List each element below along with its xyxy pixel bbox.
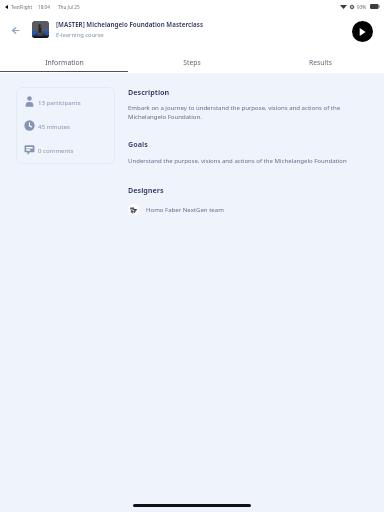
staticText: Designers bbox=[128, 185, 164, 195]
staticText: 18:04 bbox=[38, 4, 50, 10]
staticText: Homo Faber NextGen team bbox=[146, 206, 224, 214]
staticText: Description bbox=[128, 87, 170, 97]
button[interactable]: Steps bbox=[128, 53, 256, 71]
button[interactable]: Information bbox=[0, 53, 128, 71]
staticText: 0 comments bbox=[38, 146, 74, 154]
staticText: Results bbox=[309, 58, 332, 67]
button[interactable]: Back bbox=[7, 22, 23, 38]
staticText: Embark on a journey to understand the pu… bbox=[128, 104, 350, 120]
staticText: Goals bbox=[128, 139, 148, 149]
staticText: Understand the purpose, visions and acti… bbox=[128, 157, 347, 165]
staticText: E-learning course bbox=[56, 31, 104, 39]
button[interactable]: Results bbox=[256, 53, 384, 71]
button[interactable]: Play course bbox=[352, 21, 373, 42]
staticText: Thu Jul 25 bbox=[58, 4, 80, 10]
staticText: 93% bbox=[357, 4, 367, 10]
staticText: [MASTER] Michelangelo Foundation Masterc… bbox=[56, 20, 203, 28]
staticText: Steps bbox=[183, 58, 201, 67]
staticText: 45 minutes bbox=[38, 122, 70, 130]
staticText: 13 participants bbox=[38, 98, 81, 106]
staticText: Information bbox=[45, 58, 84, 67]
staticText: TestFlight bbox=[11, 4, 33, 10]
button[interactable]: Homo Faber NextGen team bbox=[128, 204, 224, 215]
